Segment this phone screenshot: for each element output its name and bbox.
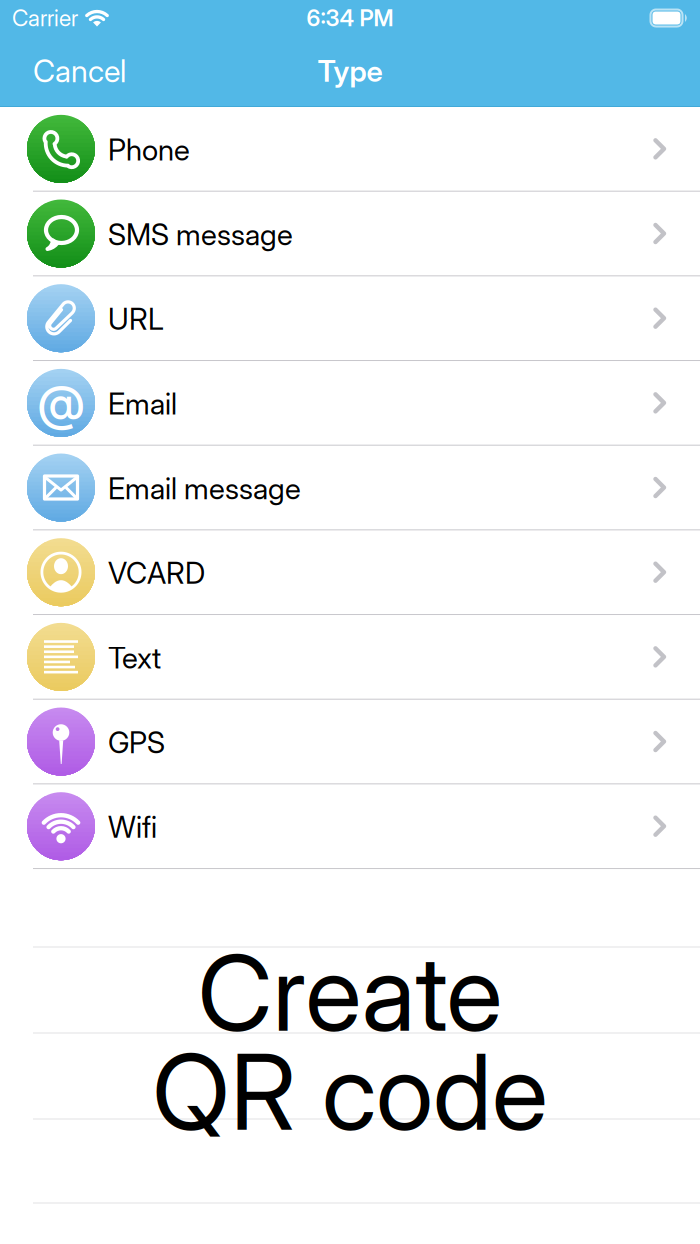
button[interactable]: URL xyxy=(0,276,700,360)
staticText: Cancel xyxy=(33,52,126,89)
staticText: Email xyxy=(108,386,177,422)
staticText: URL xyxy=(108,301,164,337)
staticText: Create xyxy=(197,930,502,1056)
button[interactable]: @ xyxy=(0,361,700,445)
staticText: SMS message xyxy=(108,217,293,252)
staticText: Phone xyxy=(108,132,190,168)
button[interactable]: Wifi xyxy=(0,784,700,868)
staticText: Wifi xyxy=(108,809,157,845)
staticText: Text xyxy=(108,640,161,676)
button[interactable]: Email message xyxy=(0,446,700,529)
staticText: Email message xyxy=(108,471,301,506)
staticText: Type xyxy=(317,53,382,89)
staticText: VCARD xyxy=(108,555,205,591)
staticText: GPS xyxy=(108,725,165,760)
button[interactable]: VCARD xyxy=(0,530,700,614)
staticText: 6:34 PM xyxy=(306,4,393,32)
button[interactable]: Cancel xyxy=(0,52,126,89)
button[interactable]: SMS message xyxy=(0,192,700,275)
button[interactable]: Phone xyxy=(0,107,700,191)
button[interactable]: Text xyxy=(0,615,700,699)
staticText: QR code xyxy=(152,1029,548,1155)
staticText: Carrier xyxy=(12,4,78,32)
button[interactable]: GPS xyxy=(0,700,700,783)
staticText: @ xyxy=(37,374,84,432)
